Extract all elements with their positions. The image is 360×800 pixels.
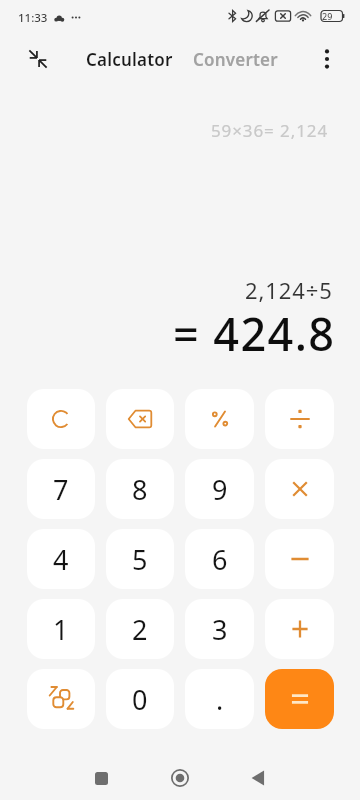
button[interactable]: Delete [106, 389, 174, 449]
button[interactable]: 4 [27, 529, 95, 589]
staticText: 9 [212, 471, 228, 508]
staticText: 7 [53, 471, 69, 508]
button[interactable]: 9 [185, 459, 254, 519]
button[interactable] [185, 389, 254, 449]
button[interactable]: Unit converter [27, 669, 95, 729]
button[interactable] [265, 669, 334, 729]
button[interactable]: Collapse [18, 39, 58, 79]
button[interactable]: 0 [106, 669, 174, 729]
staticText: 4 [53, 541, 69, 578]
button[interactable] [27, 389, 95, 449]
button[interactable] [265, 459, 334, 519]
staticText: . [216, 681, 224, 718]
button[interactable]: Recents [77, 754, 125, 800]
staticText: 6 [212, 541, 228, 578]
button[interactable] [265, 599, 334, 659]
staticText: 2,124÷5 [245, 275, 333, 305]
button[interactable] [265, 389, 334, 449]
staticText: 5 [132, 541, 148, 578]
staticText: Calculator [86, 48, 173, 71]
staticText: 8 [132, 471, 148, 508]
button[interactable]: More options [307, 39, 347, 79]
button[interactable]: Back [234, 754, 282, 800]
staticText: 3 [212, 611, 228, 648]
button[interactable]: Calculator [80, 39, 179, 79]
staticText: 1 [53, 611, 69, 648]
button[interactable]: 2 [106, 599, 174, 659]
staticText: 59×36= 2,124 [211, 119, 329, 142]
button[interactable]: 8 [106, 459, 174, 519]
button[interactable]: 7 [27, 459, 95, 519]
button[interactable] [265, 529, 334, 589]
staticText: 11:33 [18, 10, 48, 26]
button[interactable]: Converter [187, 39, 284, 79]
button[interactable]: 5 [106, 529, 174, 589]
staticText: 2 [132, 611, 148, 648]
staticText: 0 [132, 681, 148, 718]
staticText: 29 [322, 10, 333, 22]
button[interactable]: 1 [27, 599, 95, 659]
button[interactable]: 3 [185, 599, 254, 659]
button[interactable]: . [185, 669, 254, 729]
staticText: Converter [193, 48, 278, 71]
staticText: = 424.8 [173, 303, 336, 364]
button[interactable]: 6 [185, 529, 254, 589]
button[interactable]: Home [156, 754, 204, 800]
